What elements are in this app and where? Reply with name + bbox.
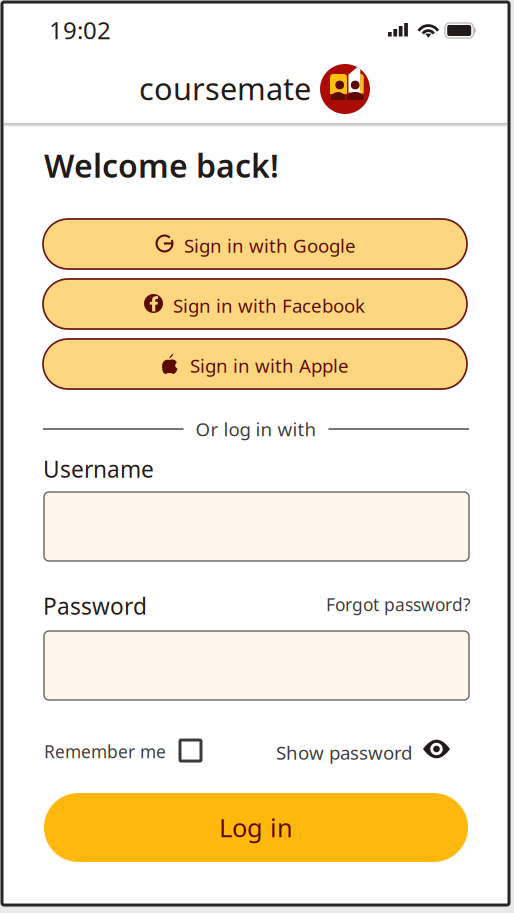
button[interactable]: Sign in with Facebook	[43, 279, 467, 329]
staticText: Sign in with Facebook	[173, 293, 365, 318]
staticText: Welcome back!	[44, 144, 279, 186]
button[interactable]: Log in	[44, 793, 468, 862]
staticText: Remember me	[44, 740, 166, 763]
button[interactable]: Sign in with Google	[43, 219, 467, 269]
button[interactable]: Sign in with Apple	[43, 339, 467, 389]
button[interactable]: Forgot password?	[326, 593, 471, 616]
staticText: 19:02	[49, 14, 111, 46]
button[interactable]: Show password	[276, 736, 453, 766]
staticText: Forgot password?	[326, 593, 471, 616]
staticText: Or log in with	[195, 417, 316, 441]
button[interactable]: Remember me	[44, 736, 201, 766]
staticText: Sign in with Google	[184, 233, 356, 258]
staticText: Username	[43, 454, 154, 484]
staticText: Password	[43, 591, 147, 621]
staticText: Log in	[219, 811, 293, 844]
staticText: coursemate	[139, 68, 311, 109]
staticText: Show password	[276, 740, 412, 765]
staticText: Sign in with Apple	[190, 353, 349, 378]
